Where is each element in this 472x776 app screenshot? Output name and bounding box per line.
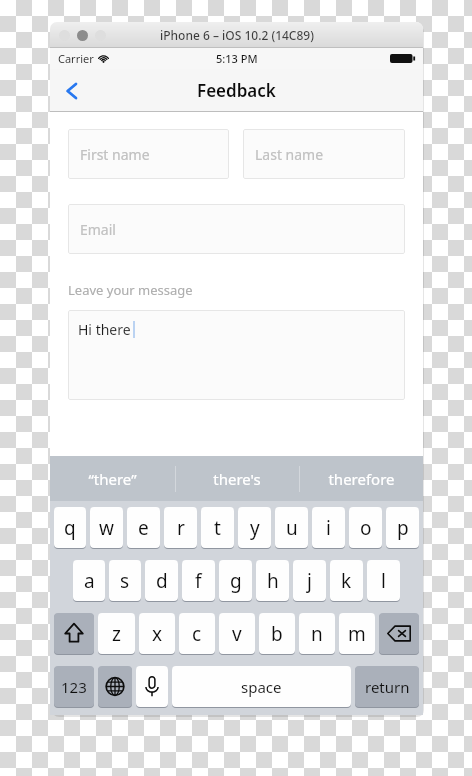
button[interactable]: f: [182, 560, 215, 601]
button[interactable]: q: [54, 507, 86, 548]
staticText: d: [156, 568, 168, 594]
staticText: h: [267, 568, 279, 594]
staticText: s: [120, 568, 130, 594]
staticText: 5:13 PM: [216, 51, 258, 66]
button[interactable]: Next keyboard: [98, 666, 132, 707]
button[interactable]: o: [349, 507, 382, 548]
staticText: x: [152, 621, 163, 647]
button[interactable]: Last name: [243, 129, 405, 179]
staticText: space: [241, 677, 282, 697]
button[interactable]: s: [109, 560, 141, 601]
button[interactable]: Email: [68, 204, 405, 254]
staticText: iPhone 6 – iOS 10.2 (14C89): [160, 27, 314, 43]
staticText: “there”: [88, 469, 137, 489]
button[interactable]: Hi there: [68, 310, 405, 400]
staticText: z: [112, 621, 121, 647]
button[interactable]: t: [201, 507, 234, 548]
button[interactable]: k: [330, 560, 363, 601]
staticText: y: [250, 515, 260, 541]
staticText: p: [397, 515, 409, 541]
staticText: w: [99, 515, 114, 541]
staticText: a: [84, 568, 95, 594]
button[interactable]: Delete: [379, 613, 419, 654]
staticText: u: [286, 515, 298, 541]
staticText: k: [341, 568, 352, 594]
staticText: g: [230, 568, 242, 594]
button[interactable]: a: [73, 560, 105, 601]
staticText: First name: [80, 145, 150, 164]
staticText: there's: [213, 469, 261, 489]
button[interactable]: j: [293, 560, 326, 601]
button[interactable]: v: [219, 613, 255, 654]
staticText: return: [365, 677, 410, 697]
button[interactable]: 123: [54, 666, 94, 707]
button[interactable]: First name: [68, 129, 229, 179]
staticText: t: [214, 515, 221, 541]
button[interactable]: c: [179, 613, 215, 654]
staticText: v: [232, 621, 242, 647]
button[interactable]: return: [355, 666, 419, 707]
staticText: c: [192, 621, 202, 647]
button[interactable]: Shift: [54, 613, 94, 654]
button[interactable]: therefore: [299, 456, 423, 501]
button[interactable]: w: [90, 507, 123, 548]
staticText: therefore: [328, 469, 395, 489]
staticText: Hi there: [78, 320, 131, 339]
staticText: r: [177, 515, 185, 541]
staticText: l: [381, 568, 386, 594]
staticText: Email: [80, 220, 116, 239]
button[interactable]: z: [98, 613, 135, 654]
staticText: n: [311, 621, 323, 647]
staticText: j: [307, 568, 312, 594]
button[interactable]: space: [172, 666, 351, 707]
staticText: Carrier: [58, 51, 94, 66]
staticText: b: [271, 621, 283, 647]
button[interactable]: e: [127, 507, 160, 548]
staticText: m: [348, 621, 366, 647]
button[interactable]: d: [145, 560, 178, 601]
button[interactable]: Minimize window: [77, 30, 88, 41]
staticText: 123: [61, 677, 87, 697]
button[interactable]: i: [312, 507, 345, 548]
staticText: Feedback: [197, 79, 276, 102]
staticText: Leave your message: [68, 281, 193, 299]
button[interactable]: Dictate: [136, 666, 168, 707]
staticText: i: [326, 515, 331, 541]
button[interactable]: m: [339, 613, 375, 654]
staticText: o: [360, 515, 372, 541]
button[interactable]: n: [299, 613, 335, 654]
button[interactable]: r: [164, 507, 197, 548]
button[interactable]: Back: [50, 69, 94, 112]
staticText: Last name: [255, 145, 324, 164]
button[interactable]: “there”: [50, 456, 175, 501]
button[interactable]: there's: [175, 456, 299, 501]
staticText: q: [64, 515, 76, 541]
button[interactable]: g: [219, 560, 252, 601]
button[interactable]: u: [275, 507, 308, 548]
staticText: e: [138, 515, 149, 541]
staticText: f: [195, 568, 202, 594]
button[interactable]: y: [238, 507, 271, 548]
button[interactable]: l: [367, 560, 400, 601]
button[interactable]: h: [256, 560, 289, 601]
button[interactable]: x: [139, 613, 175, 654]
button[interactable]: p: [386, 507, 419, 548]
button[interactable]: b: [259, 613, 295, 654]
